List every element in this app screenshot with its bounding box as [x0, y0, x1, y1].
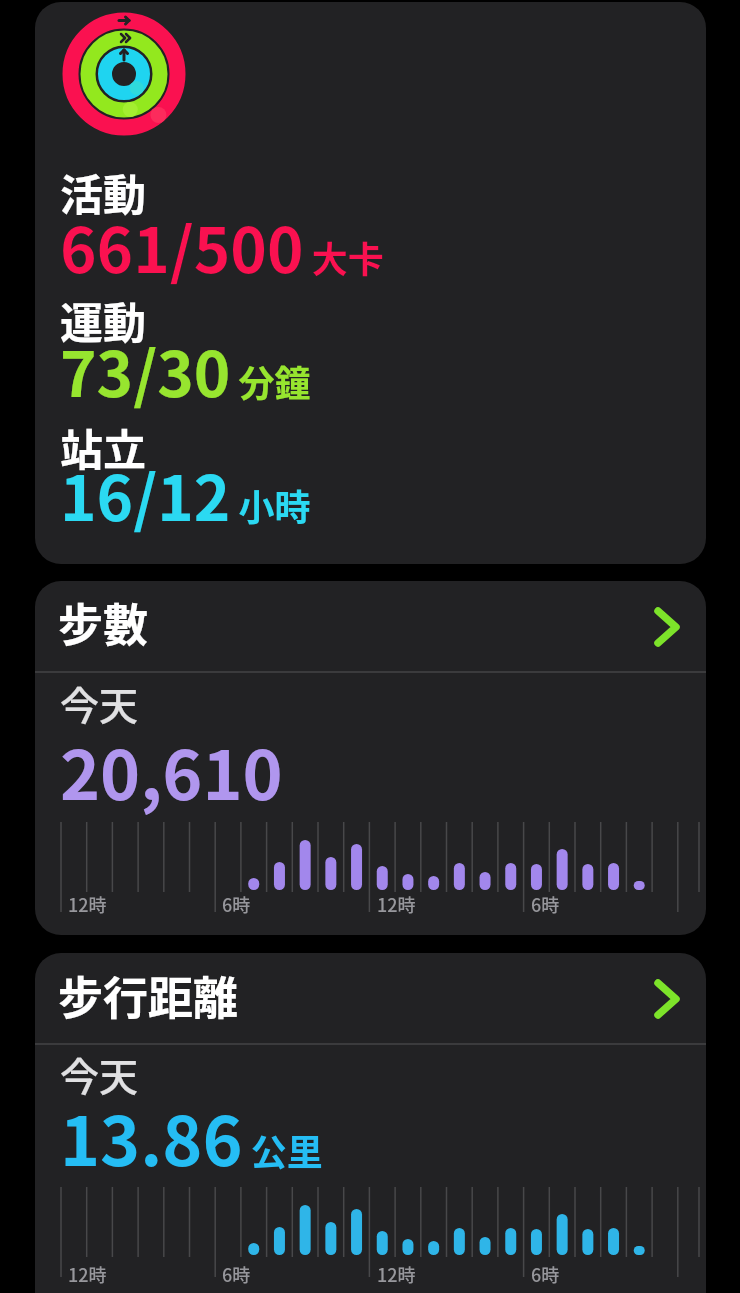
staticText: 6時: [531, 1261, 560, 1287]
button[interactable]: 活動: [35, 2, 706, 564]
staticText: 661/500 大卡: [60, 201, 384, 291]
staticText: 12時: [377, 891, 416, 917]
staticText: 12時: [68, 891, 107, 917]
staticText: 20,610: [60, 721, 283, 819]
staticText: 活動: [60, 161, 146, 223]
staticText: 12時: [68, 1261, 107, 1287]
staticText: 6時: [531, 891, 560, 917]
button[interactable]: 步行距離: [35, 953, 706, 1293]
staticText: 運動: [60, 289, 146, 351]
staticText: 12時: [377, 1261, 416, 1287]
staticText: 今天: [60, 675, 139, 731]
staticText: 6時: [222, 891, 251, 917]
staticText: 步數: [58, 590, 149, 655]
staticText: 73/30 分鐘: [60, 325, 311, 415]
staticText: 16/12 小時: [60, 449, 311, 539]
staticText: 13.86 公里: [60, 1087, 323, 1185]
staticText: 步行距離: [58, 963, 239, 1028]
staticText: 今天: [60, 1046, 139, 1102]
staticText: 6時: [222, 1261, 251, 1287]
staticText: 站立: [60, 416, 146, 478]
button[interactable]: 步數: [35, 581, 706, 935]
